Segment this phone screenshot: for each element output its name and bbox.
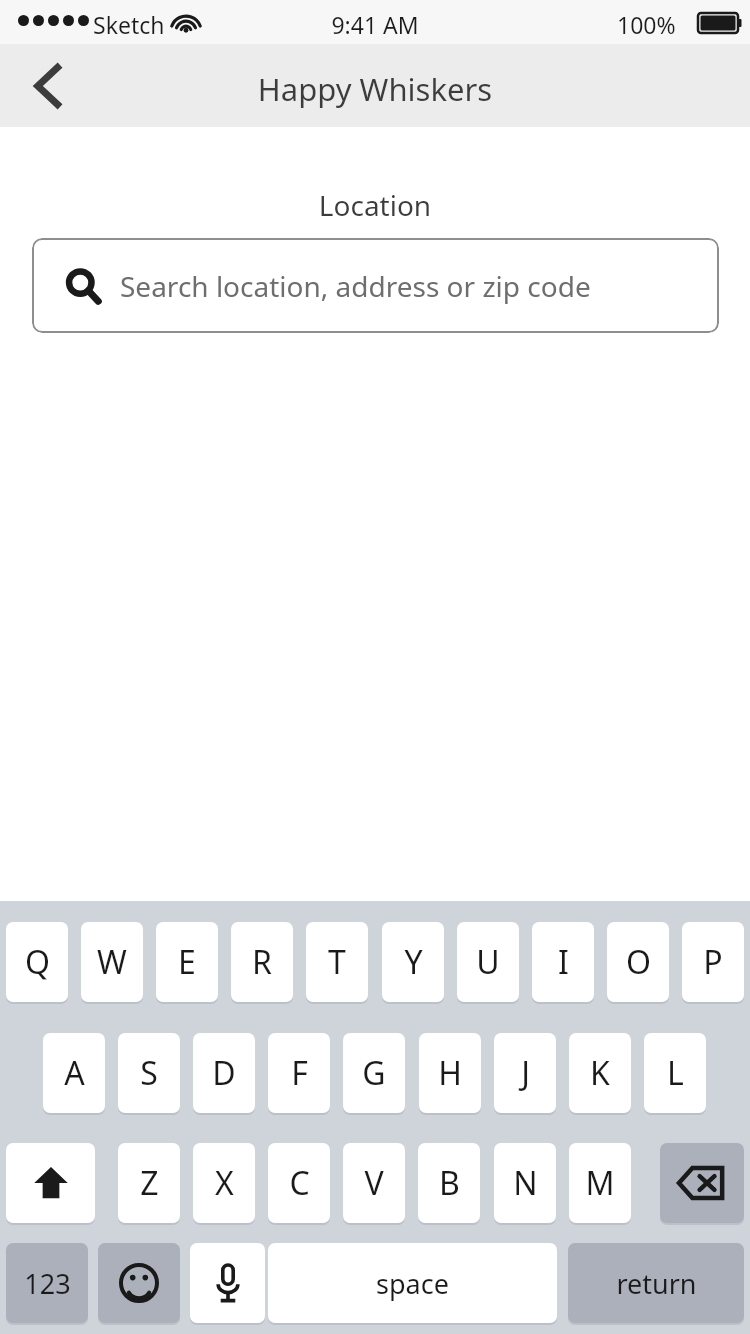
button[interactable]: Dictate [190, 1243, 265, 1323]
staticText: Q [25, 940, 50, 984]
button[interactable]: Y [382, 922, 444, 1002]
staticText: L [667, 1051, 684, 1095]
button[interactable]: Q [6, 922, 68, 1002]
button[interactable]: 123 [6, 1243, 88, 1323]
button[interactable]: D [193, 1033, 255, 1113]
button[interactable]: G [343, 1033, 405, 1113]
button[interactable]: L [644, 1033, 706, 1113]
button[interactable]: V [343, 1143, 405, 1223]
button[interactable]: O [607, 922, 669, 1002]
staticText: I [558, 940, 569, 984]
button[interactable]: Search location, address or zip code [32, 238, 719, 333]
staticText: E [178, 940, 196, 984]
staticText: R [252, 940, 272, 984]
staticText: N [513, 1161, 538, 1205]
button[interactable]: B [418, 1143, 480, 1223]
staticText: M [585, 1161, 615, 1205]
button[interactable]: Emoji [98, 1243, 180, 1323]
staticText: H [438, 1051, 462, 1095]
button[interactable]: Shift [6, 1143, 95, 1223]
staticText: 123 [24, 1265, 71, 1302]
button[interactable]: U [457, 922, 519, 1002]
button[interactable]: H [419, 1033, 481, 1113]
staticText: K [590, 1051, 610, 1095]
button[interactable]: N [494, 1143, 556, 1223]
staticText: T [328, 940, 346, 984]
staticText: J [521, 1051, 530, 1095]
staticText: B [439, 1161, 460, 1205]
button[interactable]: J [494, 1033, 556, 1113]
button[interactable]: Back [8, 54, 88, 118]
staticText: Y [404, 940, 423, 984]
staticText: Happy Whiskers [0, 68, 750, 110]
staticText: V [364, 1161, 384, 1205]
staticText: W [97, 940, 127, 984]
button[interactable]: K [569, 1033, 631, 1113]
staticText: 9:41 AM [0, 9, 750, 40]
button[interactable]: return [568, 1243, 744, 1323]
button[interactable]: S [118, 1033, 180, 1113]
staticText: space [376, 1265, 449, 1302]
staticText: A [64, 1051, 85, 1095]
staticText: S [140, 1051, 158, 1095]
staticText: F [291, 1051, 308, 1095]
button[interactable]: F [268, 1033, 330, 1113]
button[interactable]: E [156, 922, 218, 1002]
button[interactable]: C [268, 1143, 330, 1223]
staticText: return [616, 1265, 697, 1302]
button[interactable]: I [532, 922, 594, 1002]
button[interactable]: W [81, 922, 143, 1002]
button[interactable]: A [43, 1033, 105, 1113]
staticText: Sketch [93, 9, 165, 40]
button[interactable]: Z [118, 1143, 180, 1223]
staticText: 100% [617, 9, 676, 40]
button[interactable]: X [193, 1143, 255, 1223]
button[interactable]: R [231, 922, 293, 1002]
staticText: U [476, 940, 500, 984]
button[interactable]: Delete [660, 1143, 744, 1223]
staticText: Z [140, 1161, 159, 1205]
staticText: G [362, 1051, 386, 1095]
button[interactable]: T [306, 922, 368, 1002]
staticText: Location [0, 186, 750, 224]
button[interactable]: M [569, 1143, 631, 1223]
staticText: P [703, 940, 723, 984]
button[interactable]: space [268, 1243, 557, 1323]
staticText: C [289, 1161, 310, 1205]
staticText: D [212, 1051, 236, 1095]
button[interactable]: P [682, 922, 744, 1002]
staticText: Search location, address or zip code [120, 267, 591, 305]
staticText: O [626, 940, 651, 984]
staticText: X [215, 1161, 234, 1205]
